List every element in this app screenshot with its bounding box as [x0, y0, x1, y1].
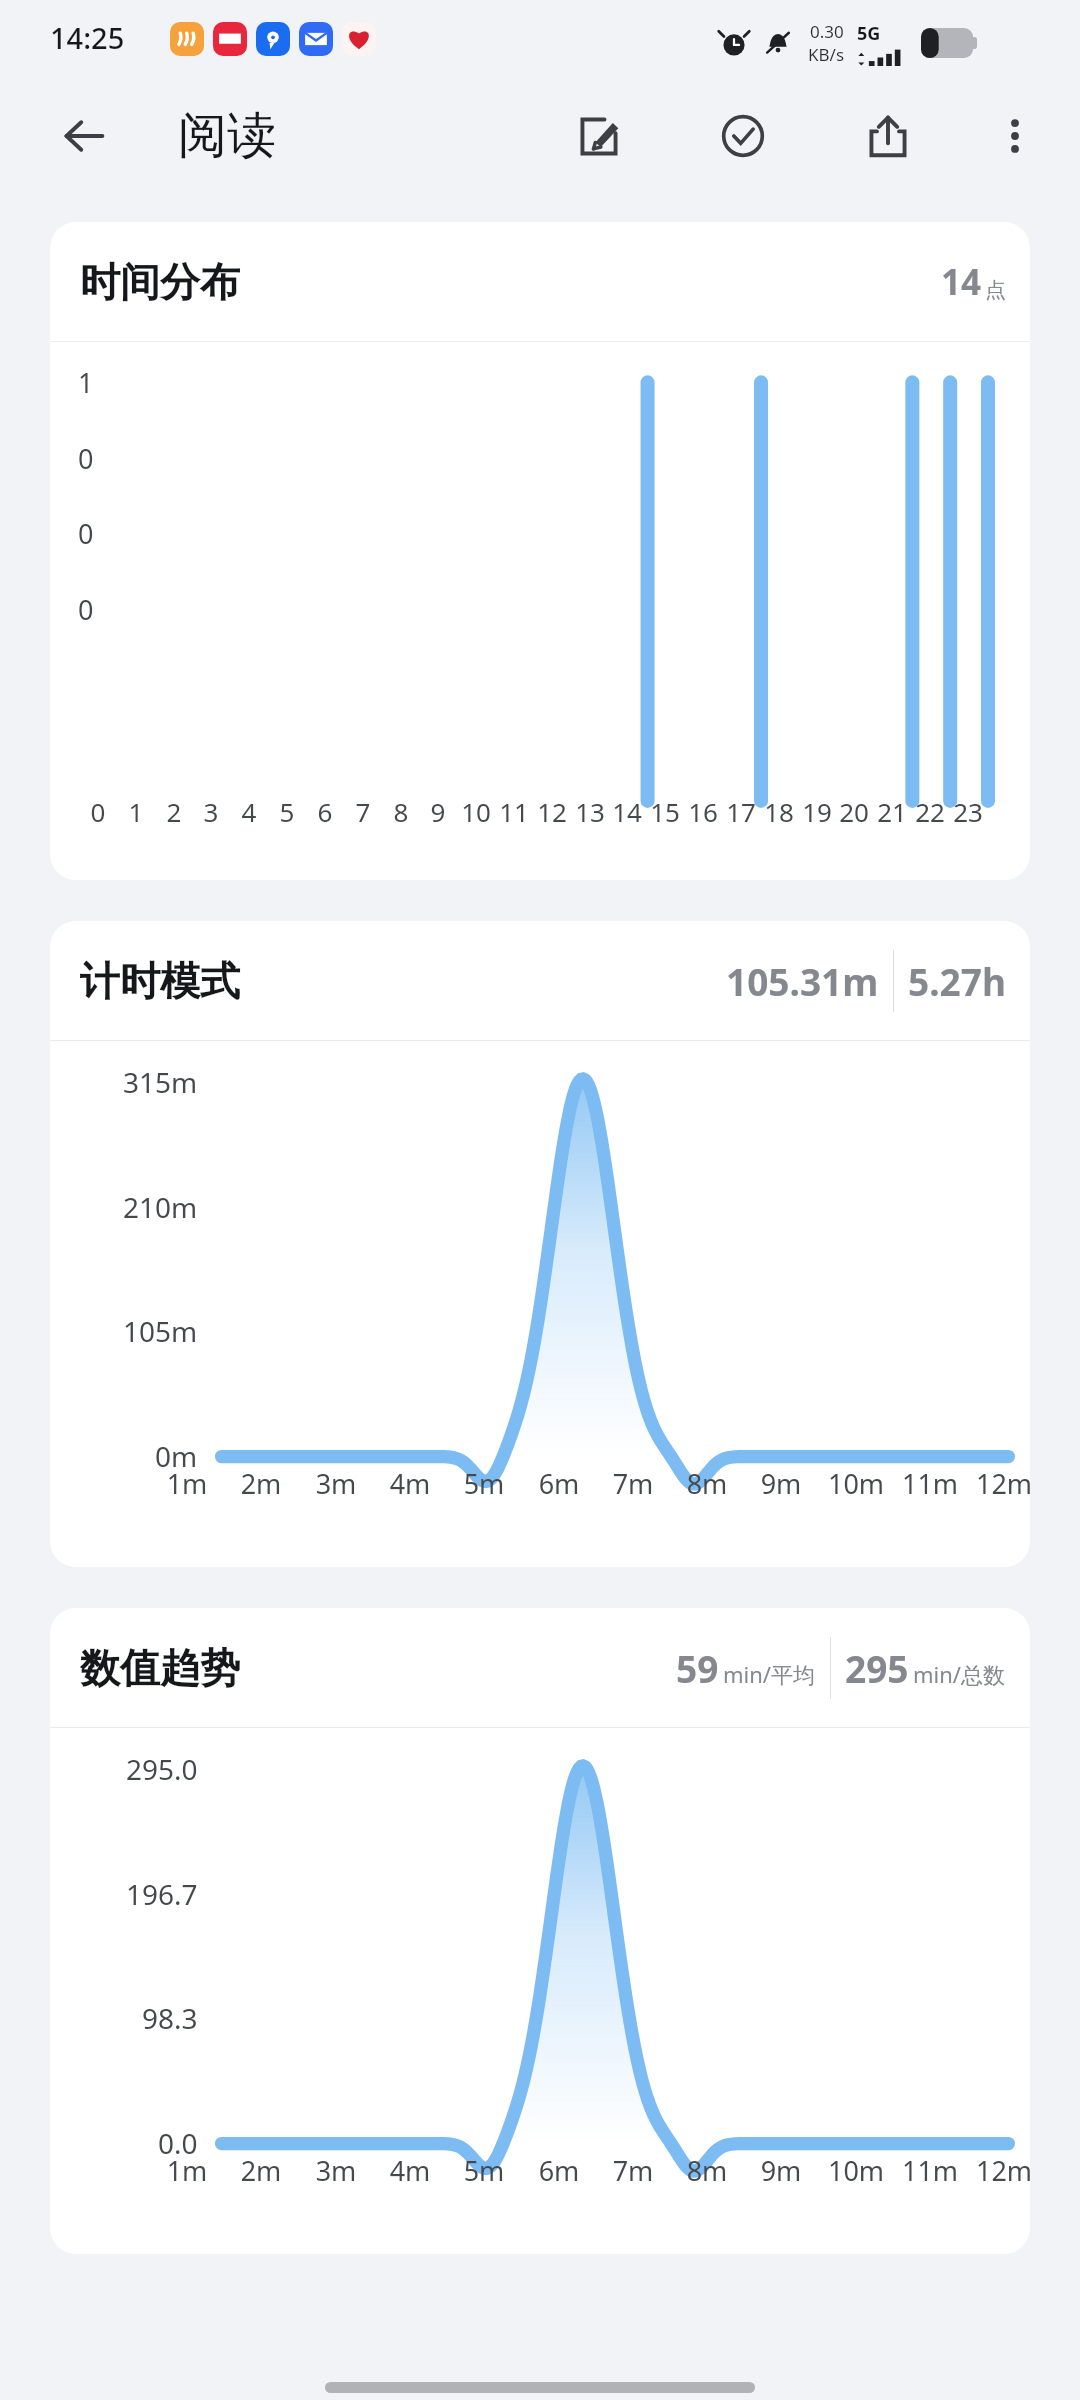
staticText: 0.0 [158, 2124, 198, 2162]
button[interactable]: Mark done [703, 96, 783, 176]
staticText: 8m [672, 1465, 742, 1502]
staticText: 0 [78, 794, 118, 829]
staticText: 0 [78, 591, 94, 628]
staticText: 295.0 [126, 1750, 198, 1788]
staticText: 1 [116, 794, 156, 829]
staticText: 11m [895, 2152, 965, 2189]
staticText: 14:25 [50, 18, 125, 57]
staticText: 105.31m [726, 956, 879, 1006]
button[interactable]: 数值趋势 [50, 1608, 1030, 2254]
staticText: 5m [449, 2152, 519, 2189]
staticText: 5G [857, 21, 881, 46]
staticText: 19 [797, 794, 837, 829]
staticText: 11m [895, 1465, 965, 1502]
button[interactable]: More options [975, 96, 1055, 176]
staticText: 0.30 [810, 20, 844, 43]
staticText: 6m [524, 2152, 594, 2189]
staticText: 数值趋势 [80, 1643, 240, 1693]
button[interactable]: Edit [559, 96, 639, 176]
staticText: 7 [343, 794, 383, 829]
staticText: 5.27h [908, 956, 1006, 1006]
staticText: 7m [598, 2152, 668, 2189]
staticText: 4m [375, 2152, 445, 2189]
staticText: 0 [78, 515, 94, 552]
button[interactable]: 时间分布 [50, 222, 1030, 880]
staticText: 8 [381, 794, 421, 829]
staticText: 0 [78, 440, 94, 477]
staticText: 15 [645, 794, 685, 829]
staticText: 12 [532, 794, 572, 829]
staticText: 196.7 [126, 1875, 198, 1913]
staticText: 时间分布 [80, 257, 240, 307]
staticText: 11 [494, 794, 534, 829]
staticText: 1m [152, 1465, 222, 1502]
staticText: 18 [759, 794, 799, 829]
staticText: 2m [226, 1465, 296, 1502]
staticText: 14 [941, 258, 982, 306]
staticText: 13 [570, 794, 610, 829]
staticText: 210m [123, 1188, 198, 1226]
staticText: 20 [834, 794, 874, 829]
staticText: 3m [301, 1465, 371, 1502]
staticText: 10m [821, 2152, 891, 2189]
button[interactable]: Back [44, 96, 124, 176]
staticText: 6 [305, 794, 345, 829]
staticText: 59 [676, 1643, 719, 1693]
staticText: 12m [969, 2152, 1030, 2189]
staticText: 6m [524, 1465, 594, 1502]
staticText: 9m [746, 1465, 816, 1502]
staticText: 2m [226, 2152, 296, 2189]
staticText: 10 [456, 794, 496, 829]
staticText: 12m [969, 1465, 1030, 1502]
staticText: 4m [375, 1465, 445, 1502]
staticText: 9m [746, 2152, 816, 2189]
staticText: 3m [301, 2152, 371, 2189]
staticText: 5 [267, 794, 307, 829]
staticText: 21 [872, 794, 912, 829]
staticText: KB/s [808, 43, 845, 66]
staticText: 98.3 [142, 1999, 198, 2037]
staticText: 16 [683, 794, 723, 829]
staticText: 8m [672, 2152, 742, 2189]
staticText: 295 [845, 1643, 909, 1693]
staticText: 7m [598, 1465, 668, 1502]
staticText: 17 [721, 794, 761, 829]
staticText: 计时模式 [80, 956, 240, 1006]
staticText: 5m [449, 1465, 519, 1502]
staticText: 3 [191, 794, 231, 829]
staticText: 1 [78, 364, 94, 401]
button[interactable]: Share [848, 96, 928, 176]
staticText: 9 [418, 794, 458, 829]
staticText: 23 [948, 794, 988, 829]
staticText: 1m [152, 2152, 222, 2189]
staticText: 0m [155, 1437, 198, 1475]
staticText: 4 [229, 794, 269, 829]
staticText: min/总数 [913, 1659, 1006, 1689]
staticText: 阅读 [178, 105, 276, 167]
staticText: 10m [821, 1465, 891, 1502]
staticText: 14 [607, 794, 647, 829]
staticText: 105m [123, 1312, 198, 1350]
staticText: 点 [985, 277, 1006, 303]
staticText: 315m [123, 1063, 198, 1101]
staticText: min/平均 [723, 1659, 816, 1689]
staticText: 22 [910, 794, 950, 829]
button[interactable]: 计时模式 [50, 921, 1030, 1567]
staticText: 2 [154, 794, 194, 829]
